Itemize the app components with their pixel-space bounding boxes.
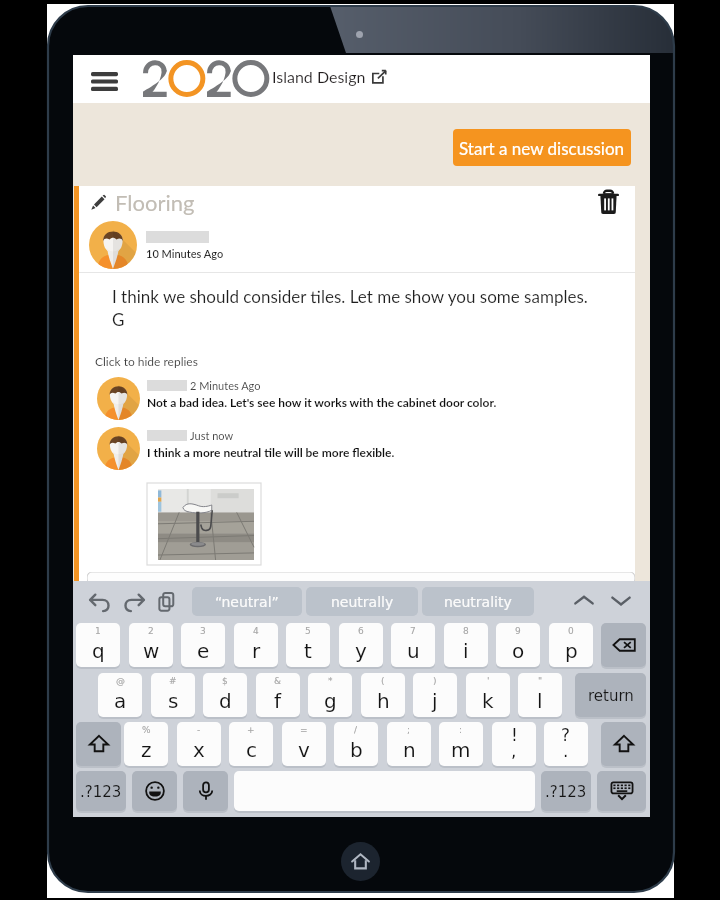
- button[interactable]: =: [282, 722, 326, 766]
- staticText: j: [432, 689, 438, 712]
- staticText: !: [511, 725, 518, 745]
- staticText: f: [274, 689, 282, 712]
- staticText: 1: [95, 626, 101, 636]
- button[interactable]: Home: [341, 842, 380, 881]
- staticText: o: [512, 639, 525, 662]
- staticText: w: [143, 639, 160, 662]
- staticText: 2 Minutes Ago: [190, 379, 261, 392]
- button[interactable]: neutrality: [422, 587, 534, 616]
- button[interactable]: ': [466, 673, 510, 717]
- button[interactable]: @: [98, 673, 142, 717]
- staticText: &: [274, 676, 282, 686]
- staticText: ": [538, 676, 543, 686]
- staticText: g: [324, 689, 337, 712]
- staticText: u: [407, 639, 420, 662]
- staticText: z: [141, 738, 152, 761]
- staticText: ?: [561, 725, 571, 745]
- button[interactable]: Edit: [372, 70, 386, 84]
- button[interactable]: Shift: [601, 722, 646, 766]
- staticText: I think we should consider tiles. Let me…: [112, 286, 588, 330]
- button[interactable]: *: [308, 673, 352, 717]
- staticText: 3: [200, 626, 206, 636]
- staticText: “neutral”: [215, 594, 279, 610]
- staticText: 0: [568, 626, 574, 636]
- staticText: neutrality: [444, 594, 512, 610]
- button[interactable]: 1: [76, 623, 120, 667]
- staticText: .?123: [545, 783, 587, 800]
- button[interactable]: Start a new discussion: [453, 129, 631, 166]
- staticText: $: [222, 676, 228, 686]
- staticText: a: [114, 689, 127, 712]
- staticText: Flooring: [115, 189, 195, 215]
- button[interactable]: :: [439, 722, 483, 766]
- staticText: v: [298, 738, 310, 761]
- button[interactable]: Delete: [593, 187, 623, 217]
- button[interactable]: Undo: [87, 589, 113, 615]
- staticText: :: [459, 725, 463, 735]
- button[interactable]: Dictate: [183, 771, 228, 811]
- staticText: Just now: [190, 429, 234, 442]
- button[interactable]: Paste: [156, 590, 180, 614]
- button[interactable]: Previous suggestion: [572, 589, 596, 613]
- staticText: /: [354, 725, 358, 735]
- button[interactable]: Redo: [121, 589, 147, 615]
- button[interactable]: 4: [234, 623, 278, 667]
- staticText: =: [300, 725, 308, 735]
- button[interactable]: 8: [444, 623, 488, 667]
- button[interactable]: #: [151, 673, 195, 717]
- button[interactable]: Numbers: [76, 771, 126, 811]
- staticText: c: [246, 738, 257, 761]
- button[interactable]: ?: [544, 722, 588, 766]
- button[interactable]: Emoji: [132, 771, 177, 811]
- button[interactable]: ;: [387, 722, 431, 766]
- button[interactable]: Return: [575, 673, 646, 717]
- button[interactable]: !: [492, 722, 536, 766]
- button[interactable]: [87, 572, 635, 584]
- button[interactable]: Next suggestion: [609, 589, 633, 613]
- button[interactable]: $: [203, 673, 247, 717]
- staticText: .: [563, 741, 569, 761]
- button[interactable]: ": [518, 673, 562, 717]
- button[interactable]: Hide keyboard: [597, 771, 646, 811]
- staticText: y: [355, 639, 367, 662]
- button[interactable]: 9: [496, 623, 540, 667]
- button[interactable]: 7: [391, 623, 435, 667]
- staticText: 9: [515, 626, 521, 636]
- button[interactable]: Shift: [76, 722, 121, 766]
- staticText: s: [168, 689, 179, 712]
- button[interactable]: Backspace: [601, 623, 646, 667]
- button[interactable]: +: [229, 722, 273, 766]
- button[interactable]: Numbers: [541, 771, 591, 811]
- staticText: 2: [148, 626, 154, 636]
- staticText: -: [197, 725, 201, 735]
- staticText: l: [537, 689, 543, 712]
- button[interactable]: Menu: [89, 66, 119, 96]
- button[interactable]: 0: [549, 623, 593, 667]
- button[interactable]: [147, 483, 261, 565]
- button[interactable]: neutrally: [306, 587, 418, 616]
- button[interactable]: Click to hide replies: [95, 354, 198, 368]
- staticText: k: [482, 689, 494, 712]
- staticText: ,: [511, 741, 517, 761]
- staticText: m: [451, 738, 471, 761]
- staticText: h: [377, 689, 390, 712]
- staticText: %: [142, 725, 151, 735]
- button[interactable]: ): [413, 673, 457, 717]
- staticText: ): [433, 676, 437, 686]
- button[interactable]: “neutral”: [192, 587, 302, 616]
- button[interactable]: (: [361, 673, 405, 717]
- button[interactable]: 5: [286, 623, 330, 667]
- button[interactable]: 2: [129, 623, 173, 667]
- button[interactable]: 3: [181, 623, 225, 667]
- button[interactable]: &: [256, 673, 300, 717]
- staticText: 5: [305, 626, 311, 636]
- staticText: b: [350, 738, 363, 761]
- button[interactable]: -: [177, 722, 221, 766]
- button[interactable]: 6: [339, 623, 383, 667]
- staticText: t: [304, 639, 312, 662]
- staticText: r: [252, 639, 261, 662]
- button[interactable]: %: [124, 722, 168, 766]
- button[interactable]: /: [334, 722, 378, 766]
- staticText: 6: [358, 626, 364, 636]
